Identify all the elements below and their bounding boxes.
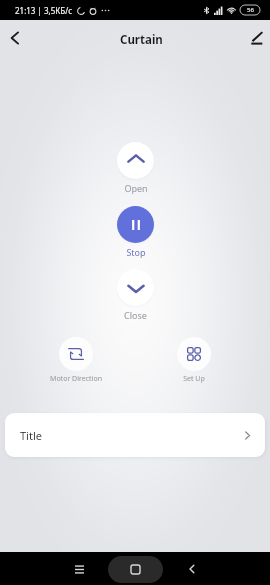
staticText: Stop [126, 246, 146, 258]
button[interactable]: Motor Direction [16, 337, 136, 384]
staticText: Close [124, 309, 147, 321]
staticText: Motor Direction [50, 374, 102, 384]
button[interactable]: Recent apps [67, 557, 91, 581]
button[interactable]: Back [180, 557, 204, 581]
button[interactable] [117, 142, 154, 179]
button[interactable]: Title [5, 413, 265, 457]
staticText: 56 [247, 6, 254, 14]
staticText: Open [124, 182, 148, 194]
staticText: Curtain [120, 32, 163, 48]
button[interactable]: Set Up [134, 337, 254, 384]
staticText: 21:13 | 3,5КБ/c [15, 5, 73, 16]
button[interactable]: Home [108, 556, 163, 583]
staticText: Title [20, 428, 42, 443]
button[interactable]: Back [0, 23, 30, 53]
button[interactable] [117, 269, 154, 306]
button[interactable] [117, 206, 154, 243]
button[interactable]: Edit [240, 22, 270, 54]
staticText: Set Up [183, 374, 205, 384]
